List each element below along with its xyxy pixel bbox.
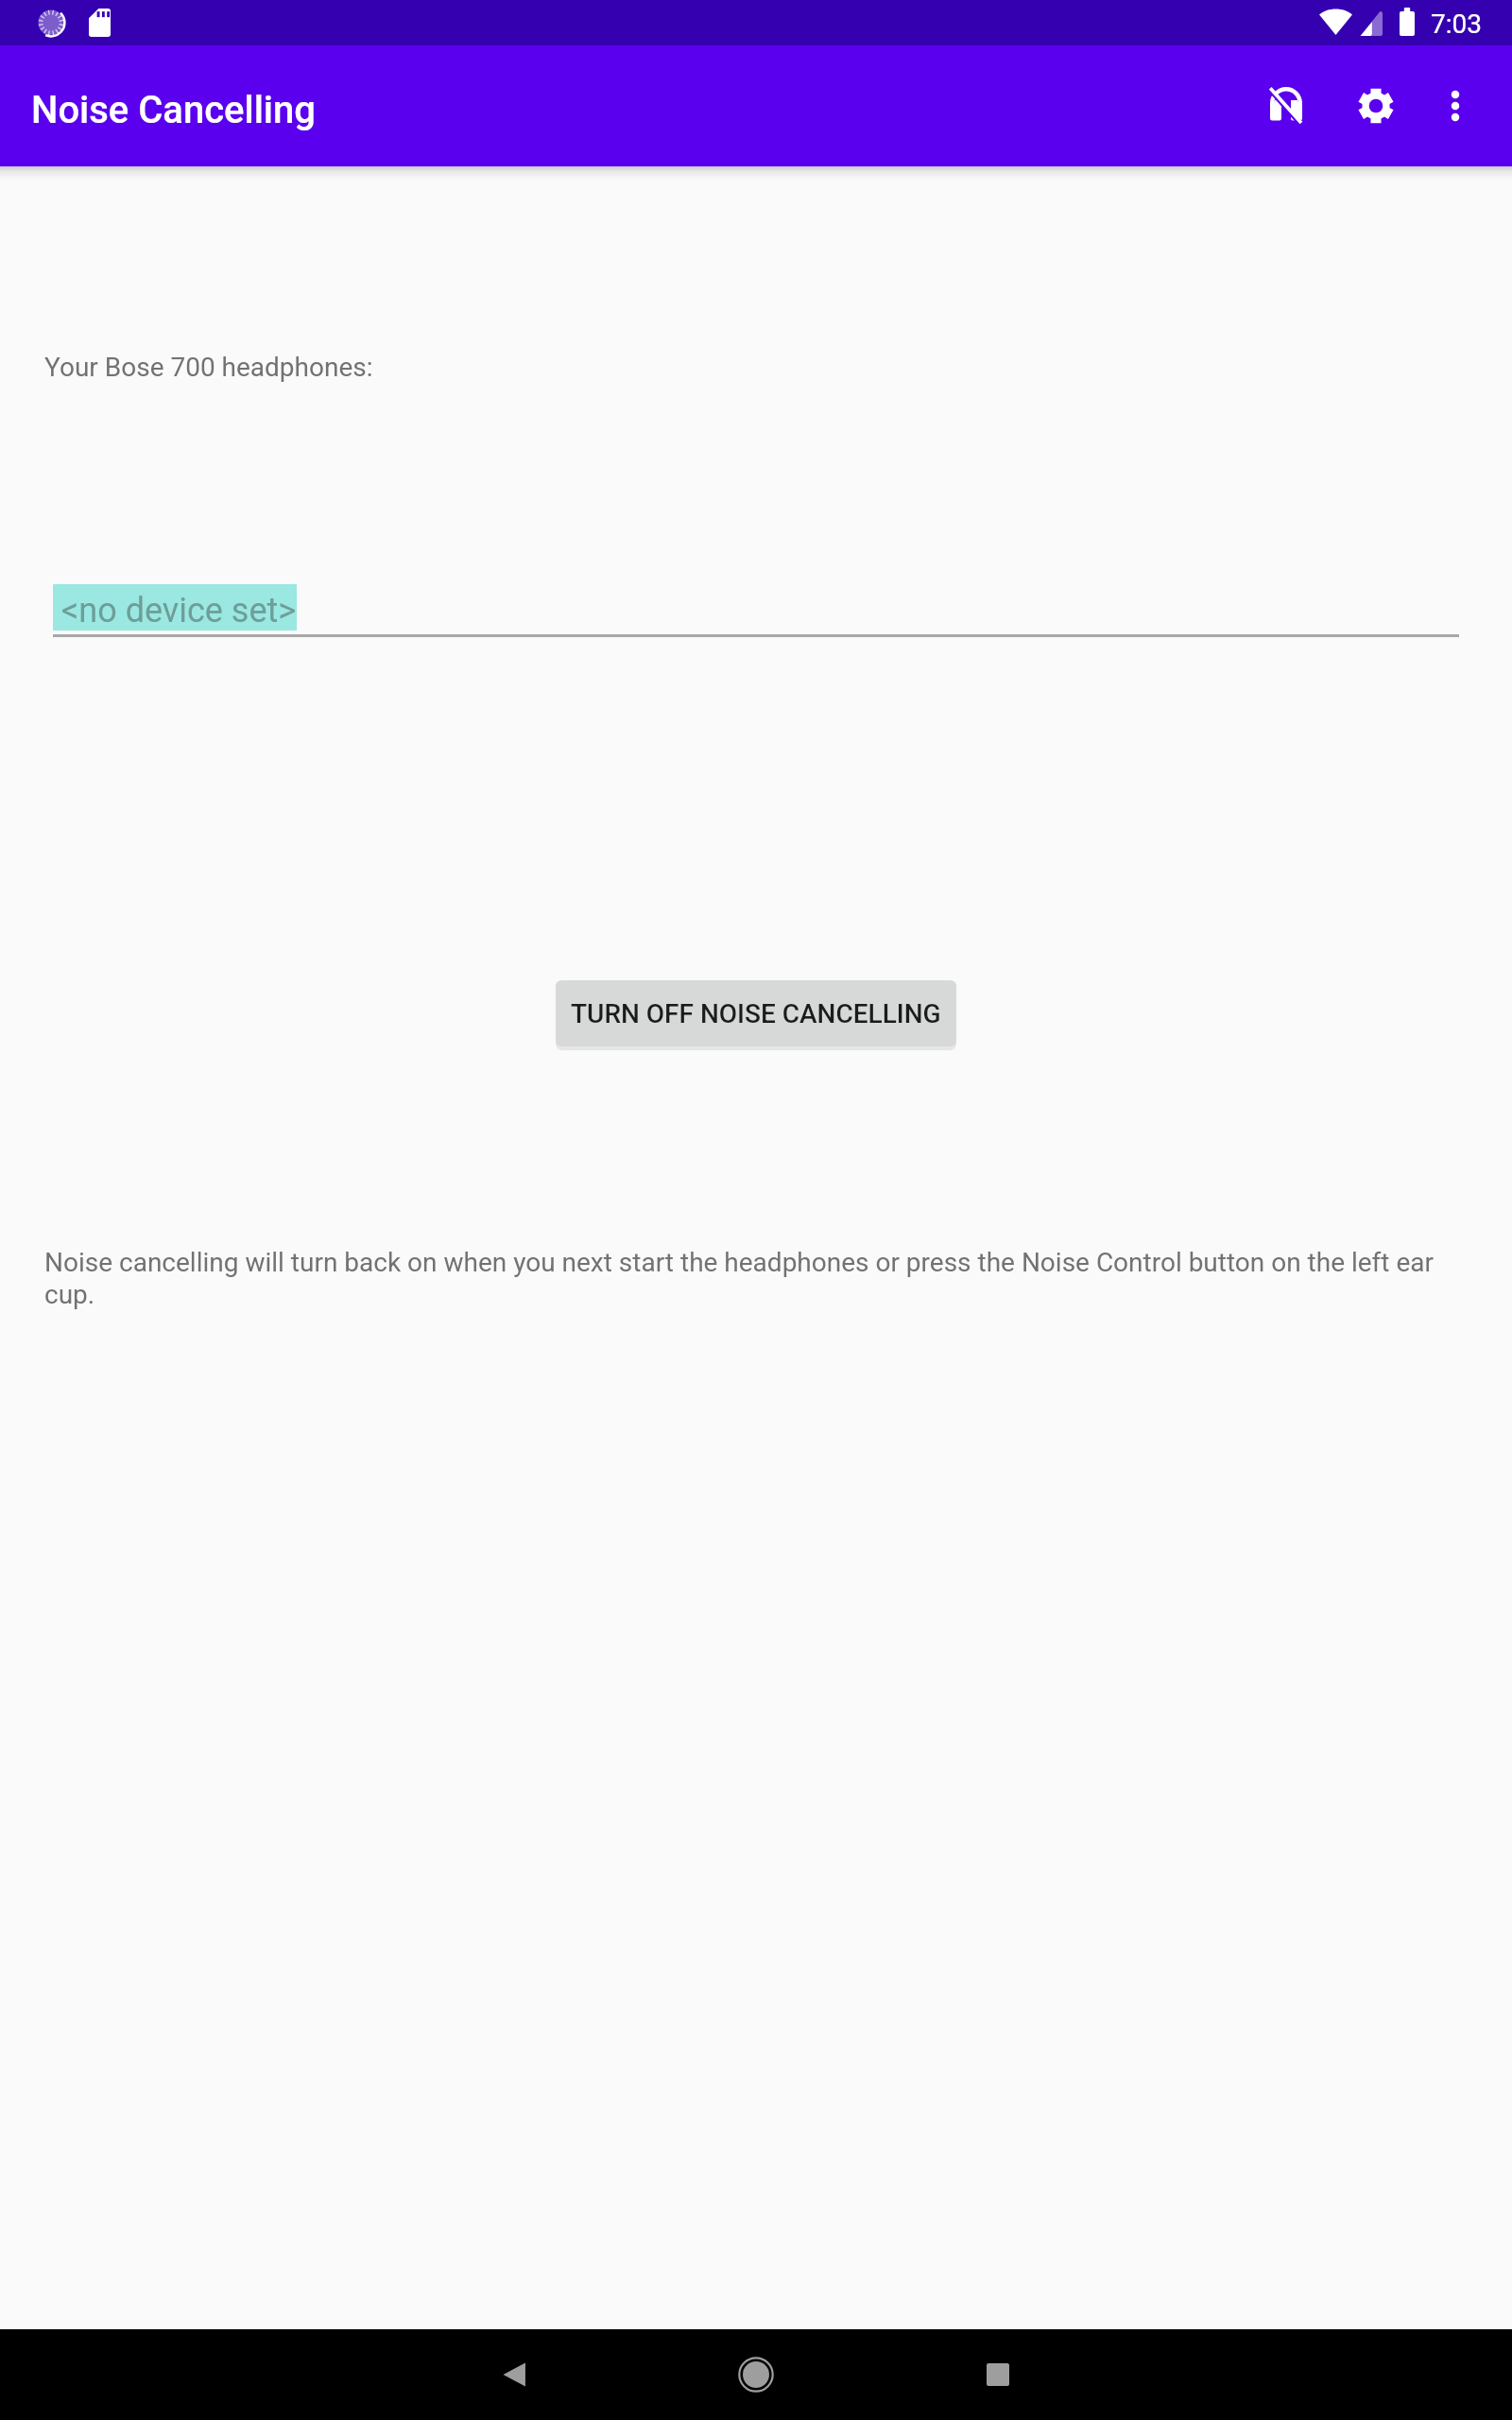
- staticText: <no device set>: [61, 591, 297, 631]
- staticText: 7:03: [1431, 9, 1482, 40]
- button[interactable]: Headset off: [1241, 60, 1332, 151]
- button[interactable]: Recent apps: [953, 2329, 1043, 2420]
- button[interactable]: TURN OFF NOISE CANCELLING: [556, 980, 956, 1046]
- staticText: Noise cancelling will turn back on when …: [44, 1247, 1468, 1310]
- button[interactable]: Back: [470, 2329, 560, 2420]
- button[interactable]: More options: [1410, 60, 1501, 151]
- button[interactable]: <no device set>: [53, 584, 297, 631]
- staticText: Noise Cancelling: [31, 88, 316, 132]
- staticText: TURN OFF NOISE CANCELLING: [571, 998, 941, 1029]
- button[interactable]: Settings: [1331, 60, 1421, 151]
- staticText: Your Bose 700 headphones:: [44, 352, 373, 383]
- button[interactable]: Home: [711, 2329, 801, 2420]
